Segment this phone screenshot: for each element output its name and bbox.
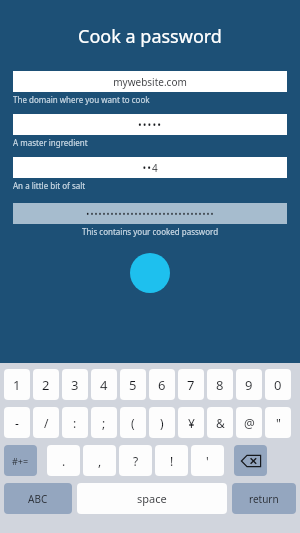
staticText: , xyxy=(98,453,102,469)
staticText: The domain where you want to cook xyxy=(13,94,287,105)
button[interactable]: 7 xyxy=(178,369,204,400)
staticText: ? xyxy=(133,453,139,469)
button[interactable]: #+= xyxy=(4,445,37,476)
staticText: 0 xyxy=(274,376,282,394)
staticText: - xyxy=(15,415,19,431)
button[interactable]: : xyxy=(62,407,88,438)
button[interactable]: 2 xyxy=(33,369,59,400)
staticText: ABC xyxy=(28,492,48,506)
staticText: An a little bit of salt xyxy=(13,180,287,191)
button[interactable]: @ xyxy=(236,407,262,438)
staticText: 3 xyxy=(71,376,79,394)
button[interactable]: ! xyxy=(155,445,188,476)
button[interactable]: 1 xyxy=(4,369,30,400)
staticText: : xyxy=(73,415,77,431)
staticText: #+= xyxy=(12,455,29,467)
staticText: ••••• xyxy=(138,118,162,132)
staticText: 9 xyxy=(245,376,253,394)
staticText: ••4 xyxy=(142,161,159,175)
button[interactable]: Backspace xyxy=(234,445,267,476)
button[interactable]: Cook xyxy=(130,253,170,293)
staticText: @ xyxy=(244,415,255,431)
button[interactable]: ABC xyxy=(4,483,72,514)
button[interactable]: 0 xyxy=(265,369,291,400)
button[interactable]: ••4 xyxy=(13,157,287,178)
button[interactable]: 6 xyxy=(149,369,175,400)
button[interactable]: , xyxy=(83,445,116,476)
staticText: 2 xyxy=(42,376,50,394)
button[interactable]: ••••• xyxy=(13,114,287,135)
button[interactable]: ; xyxy=(91,407,117,438)
staticText: space xyxy=(137,491,167,506)
staticText: 8 xyxy=(216,376,224,394)
staticText: ) xyxy=(160,415,164,431)
button[interactable]: 4 xyxy=(91,369,117,400)
button[interactable]: ¥ xyxy=(178,407,204,438)
staticText: / xyxy=(44,415,49,431)
button[interactable]: ) xyxy=(149,407,175,438)
button[interactable]: . xyxy=(47,445,80,476)
button[interactable]: 3 xyxy=(62,369,88,400)
staticText: ; xyxy=(102,415,106,431)
staticText: ! xyxy=(170,453,174,469)
button[interactable]: space xyxy=(77,483,227,514)
staticText: •••••••••••••••••••••••••••••••• xyxy=(86,208,215,219)
staticText: 5 xyxy=(129,376,137,394)
staticText: Cook a password xyxy=(0,24,300,49)
button[interactable]: mywebsite.com xyxy=(13,71,287,92)
staticText: 6 xyxy=(158,376,166,394)
staticText: " xyxy=(276,415,281,431)
button[interactable]: & xyxy=(207,407,233,438)
button[interactable]: return xyxy=(232,483,296,514)
staticText: 1 xyxy=(13,376,21,394)
button[interactable]: 9 xyxy=(236,369,262,400)
button[interactable]: 8 xyxy=(207,369,233,400)
button[interactable]: / xyxy=(33,407,59,438)
staticText: 7 xyxy=(187,376,195,394)
button[interactable]: 5 xyxy=(120,369,146,400)
staticText: A master ingredient xyxy=(13,137,287,148)
staticText: ' xyxy=(206,453,209,469)
staticText: ¥ xyxy=(188,415,195,431)
staticText: 4 xyxy=(100,376,108,394)
button[interactable]: •••••••••••••••••••••••••••••••• xyxy=(13,203,287,224)
staticText: ( xyxy=(131,415,135,431)
button[interactable]: - xyxy=(4,407,30,438)
staticText: . xyxy=(62,453,66,469)
staticText: & xyxy=(216,415,225,431)
staticText: mywebsite.com xyxy=(113,75,187,89)
staticText: This contains your cooked password xyxy=(13,226,287,237)
button[interactable]: ( xyxy=(120,407,146,438)
button[interactable]: ' xyxy=(191,445,224,476)
button[interactable]: " xyxy=(265,407,291,438)
button[interactable]: ? xyxy=(119,445,152,476)
staticText: return xyxy=(249,492,279,506)
